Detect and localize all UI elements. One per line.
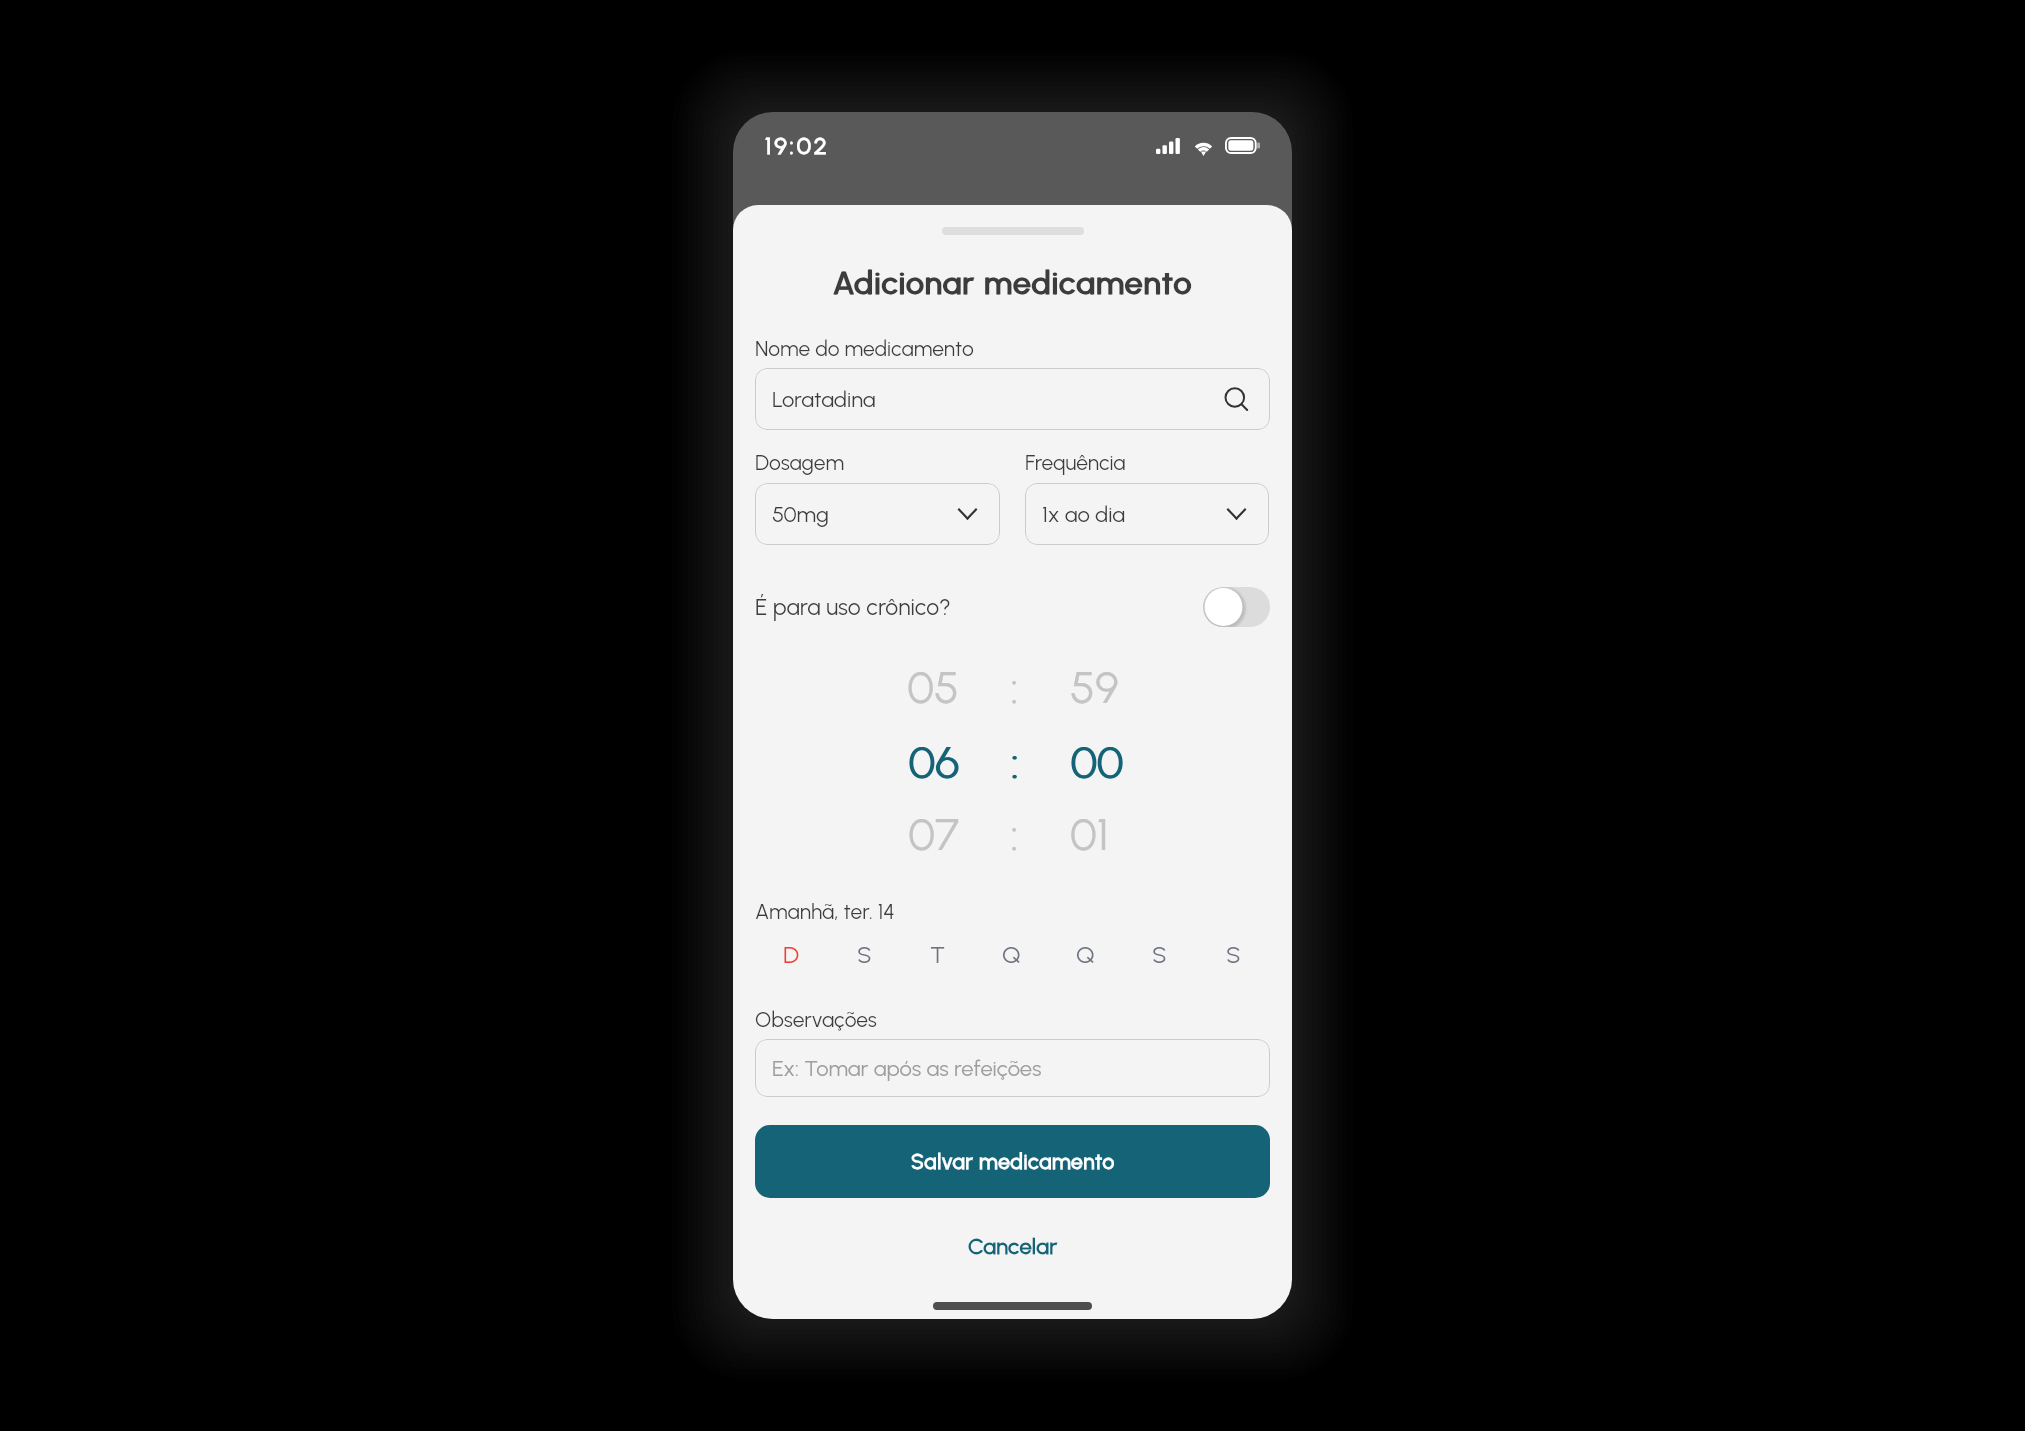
- staticText: 06: [756, 735, 960, 789]
- button[interactable]: Loratadina: [755, 368, 1270, 430]
- staticText: 50mg: [772, 501, 829, 527]
- staticText: Salvar medicamento: [911, 1149, 1115, 1174]
- button[interactable]: S: [1196, 932, 1270, 976]
- button[interactable]: Salvar medicamento: [755, 1125, 1270, 1198]
- other: Buscar medicamento: [1225, 386, 1249, 410]
- other: Abrir lista: [958, 508, 977, 520]
- staticText: 19:02: [765, 131, 830, 160]
- button[interactable]: Q: [1048, 932, 1122, 976]
- staticText: :: [959, 735, 1070, 789]
- other: Bateria: [1225, 137, 1260, 154]
- button[interactable]: D: [755, 932, 828, 976]
- staticText: S: [1152, 940, 1167, 969]
- staticText: Frequência: [1025, 450, 1126, 475]
- staticText: Adicionar medicamento: [755, 265, 1270, 302]
- button[interactable]: É para uso crônico?: [755, 580, 1270, 633]
- button[interactable]: S: [1122, 932, 1196, 976]
- other: Wi-Fi: [1192, 138, 1215, 154]
- staticText: 05: [755, 660, 959, 714]
- button[interactable]: S: [828, 932, 901, 976]
- staticText: :: [960, 735, 1071, 789]
- staticText: 00: [1071, 735, 1270, 789]
- staticText: Observações: [755, 1007, 877, 1032]
- staticText: 07: [755, 807, 959, 861]
- staticText: 1x ao dia: [1042, 501, 1126, 527]
- staticText: Q: [1076, 940, 1095, 969]
- staticText: 00: [1070, 735, 1269, 789]
- button[interactable]: Cancelar: [755, 1222, 1270, 1270]
- staticText: 06: [755, 735, 959, 789]
- staticText: S: [857, 940, 872, 969]
- staticText: D: [783, 940, 800, 969]
- staticText: Amanhã, ter. 14: [755, 899, 895, 924]
- staticText: S: [1226, 940, 1241, 969]
- staticText: 01: [1070, 807, 1269, 861]
- button[interactable]: 50mg: [755, 483, 1000, 545]
- button[interactable]: Ex: Tomar após as refeições: [755, 1039, 1270, 1097]
- staticText: Nome do medicamento: [755, 336, 974, 361]
- other: Abrir lista: [1227, 508, 1246, 520]
- staticText: 59: [1070, 660, 1269, 714]
- staticText: Cancelar: [968, 1233, 1058, 1259]
- staticText: Dosagem: [755, 450, 845, 475]
- staticText: É para uso crônico?: [755, 593, 951, 621]
- button[interactable]: T: [901, 932, 974, 976]
- other: Sinal de celular: [1156, 138, 1181, 154]
- button[interactable]: Q: [974, 932, 1048, 976]
- staticText: Q: [1002, 940, 1021, 969]
- staticText: Loratadina: [772, 386, 876, 412]
- staticText: T: [930, 940, 946, 969]
- button[interactable]: 1x ao dia: [1025, 483, 1269, 545]
- staticText: Adicionar medicamento: [756, 265, 1271, 302]
- staticText: Ex: Tomar após as refeições: [772, 1055, 1042, 1081]
